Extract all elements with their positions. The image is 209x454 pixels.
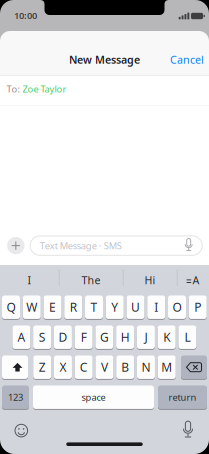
button[interactable]: To: — [0, 74, 209, 103]
button[interactable]: G — [95, 325, 113, 349]
staticText: Zoe Taylor — [22, 83, 66, 95]
button[interactable]: P — [189, 295, 207, 319]
button[interactable]: Text Message SMS input — [30, 236, 202, 255]
staticText: I — [154, 299, 158, 315]
button[interactable]: U — [126, 295, 144, 319]
staticText: B — [121, 359, 129, 375]
button[interactable]: I — [147, 295, 165, 319]
staticText: To: — [6, 83, 20, 95]
button[interactable]: Shift — [2, 355, 28, 379]
staticText: 10:00 — [14, 9, 37, 22]
staticText: Y — [111, 299, 118, 315]
staticText: J — [144, 329, 147, 345]
staticText: Text Message · SMS — [40, 239, 122, 252]
button[interactable]: Cancel — [170, 52, 204, 67]
button[interactable]: X — [54, 355, 72, 379]
button[interactable]: D — [54, 325, 72, 349]
staticText: Hi — [144, 273, 155, 287]
staticText: I — [27, 273, 31, 287]
button[interactable]: A — [12, 325, 30, 349]
button[interactable]: Z — [33, 355, 51, 379]
button[interactable]: S — [33, 325, 51, 349]
staticText: Z — [39, 359, 46, 375]
staticText: L — [184, 329, 190, 345]
staticText: R — [70, 299, 77, 315]
button[interactable]: Emoji — [13, 423, 29, 439]
button[interactable]: return — [158, 385, 207, 409]
staticText: F — [81, 329, 87, 345]
staticText: H — [121, 329, 130, 345]
button[interactable]: K — [158, 325, 176, 349]
staticText: X — [59, 359, 66, 375]
button[interactable]: L — [178, 325, 196, 349]
button[interactable]: R — [64, 295, 82, 319]
button[interactable]: C — [75, 355, 93, 379]
staticText: G — [100, 329, 109, 345]
button[interactable]: Predictive input options — [180, 269, 206, 291]
staticText: U — [131, 299, 140, 315]
staticText: P — [194, 299, 201, 315]
button[interactable]: V — [95, 355, 113, 379]
staticText: M — [161, 359, 172, 375]
button[interactable]: Add attachment — [7, 237, 24, 254]
button[interactable]: B — [116, 355, 134, 379]
button[interactable]: N — [137, 355, 155, 379]
button[interactable]: F — [75, 325, 93, 349]
button[interactable]: The — [63, 269, 119, 291]
staticText: N — [141, 359, 150, 375]
button[interactable]: T — [85, 295, 103, 319]
button[interactable]: H — [116, 325, 134, 349]
staticText: New Message — [69, 52, 140, 67]
staticText: K — [163, 329, 170, 345]
staticText: V — [101, 359, 108, 375]
button[interactable]: W — [23, 295, 41, 319]
staticText: A — [17, 329, 25, 345]
button[interactable]: Hi — [126, 269, 174, 291]
staticText: O — [172, 299, 181, 315]
staticText: C — [80, 359, 88, 375]
button[interactable]: E — [43, 295, 61, 319]
button[interactable]: space — [33, 385, 154, 409]
button[interactable]: 123 — [2, 385, 29, 409]
button[interactable]: I — [4, 269, 54, 291]
button[interactable]: Dictation — [180, 421, 196, 439]
button[interactable]: Y — [106, 295, 124, 319]
button[interactable]: Q — [2, 295, 20, 319]
staticText: S — [39, 329, 46, 345]
button[interactable]: O — [168, 295, 186, 319]
button[interactable]: Delete — [181, 355, 207, 379]
staticText: Cancel — [170, 52, 204, 67]
staticText: The — [81, 273, 100, 287]
button[interactable]: J — [137, 325, 155, 349]
staticText: W — [26, 299, 37, 315]
staticText: space — [81, 391, 105, 403]
staticText: E — [49, 299, 56, 315]
staticText: Q — [6, 299, 15, 315]
staticText: T — [90, 299, 97, 315]
button[interactable]: M — [158, 355, 176, 379]
staticText: A — [192, 273, 199, 287]
staticText: D — [58, 329, 67, 345]
staticText: 123 — [8, 391, 23, 403]
staticText: return — [168, 391, 196, 403]
